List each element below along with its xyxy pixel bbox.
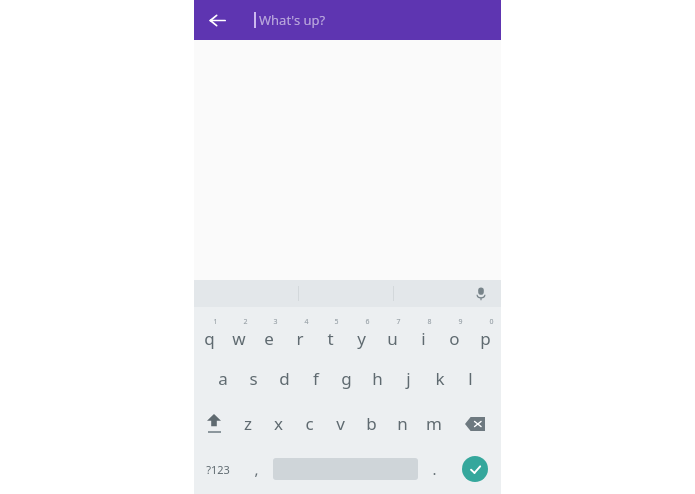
button[interactable]: s <box>238 356 269 401</box>
button[interactable]: 6 <box>346 311 377 356</box>
staticText: t <box>327 327 334 350</box>
staticText: , <box>254 459 259 479</box>
staticText: . <box>432 459 437 479</box>
button[interactable]: g <box>331 356 362 401</box>
button[interactable]: n <box>387 401 418 446</box>
button[interactable]: d <box>269 356 300 401</box>
staticText: k <box>435 367 445 390</box>
button[interactable]: 0 <box>470 311 501 356</box>
button[interactable]: 7 <box>377 311 408 356</box>
staticText: c <box>305 412 314 435</box>
button[interactable]: v <box>325 401 356 446</box>
button[interactable]: b <box>356 401 387 446</box>
staticText: m <box>426 412 442 435</box>
staticText: a <box>218 367 228 390</box>
button[interactable]: 5 <box>315 311 346 356</box>
button[interactable]: h <box>362 356 393 401</box>
staticText: h <box>372 367 383 390</box>
staticText: l <box>468 367 473 390</box>
staticText: z <box>244 412 252 435</box>
button[interactable]: Voice input <box>469 282 493 306</box>
button[interactable]: Back <box>200 3 234 37</box>
staticText: i <box>421 327 426 350</box>
button[interactable]: c <box>294 401 325 446</box>
staticText: v <box>336 412 345 435</box>
staticText: j <box>406 367 411 390</box>
button[interactable]: Backspace <box>449 401 501 446</box>
staticText: 2 <box>243 317 248 327</box>
button[interactable]: 1 <box>194 311 224 356</box>
button[interactable]: a <box>208 356 238 401</box>
staticText: w <box>232 327 246 350</box>
staticText: 1 <box>213 317 218 327</box>
button[interactable]: Send <box>462 456 488 482</box>
staticText: x <box>274 412 283 435</box>
button[interactable]: j <box>393 356 424 401</box>
staticText: s <box>249 367 258 390</box>
staticText: g <box>341 367 352 390</box>
staticText: ?123 <box>206 462 230 477</box>
staticText: n <box>397 412 408 435</box>
staticText: r <box>296 327 304 350</box>
button[interactable]: 8 <box>408 311 439 356</box>
button[interactable]: f <box>300 356 331 401</box>
staticText: f <box>313 367 319 390</box>
staticText: d <box>279 367 290 390</box>
button[interactable]: 2 <box>224 311 254 356</box>
button[interactable]: x <box>263 401 294 446</box>
button[interactable]: 9 <box>439 311 470 356</box>
staticText: What's up? <box>259 11 326 29</box>
staticText: o <box>449 327 460 350</box>
button[interactable]: k <box>424 356 455 401</box>
staticText: 9 <box>458 317 463 327</box>
staticText: 8 <box>427 317 432 327</box>
button[interactable]: z <box>233 401 263 446</box>
staticText: b <box>366 412 377 435</box>
staticText: 7 <box>396 317 401 327</box>
button[interactable]: Shift <box>194 401 233 446</box>
button[interactable]: 3 <box>254 311 284 356</box>
staticText: p <box>480 327 491 350</box>
staticText: 3 <box>273 317 278 327</box>
button[interactable]: , <box>242 446 271 492</box>
staticText: u <box>387 327 398 350</box>
staticText: 4 <box>304 317 309 327</box>
button[interactable]: l <box>455 356 486 401</box>
button[interactable]: What's up? <box>254 3 501 37</box>
staticText: e <box>264 327 274 350</box>
staticText: q <box>204 327 215 350</box>
button[interactable]: . <box>420 446 449 492</box>
button[interactable]: ?123 <box>194 446 242 492</box>
button[interactable]: m <box>418 401 449 446</box>
staticText: 5 <box>334 317 339 327</box>
button[interactable]: 4 <box>284 311 315 356</box>
staticText: y <box>357 327 366 350</box>
staticText: 0 <box>489 317 494 327</box>
staticText: 6 <box>365 317 370 327</box>
